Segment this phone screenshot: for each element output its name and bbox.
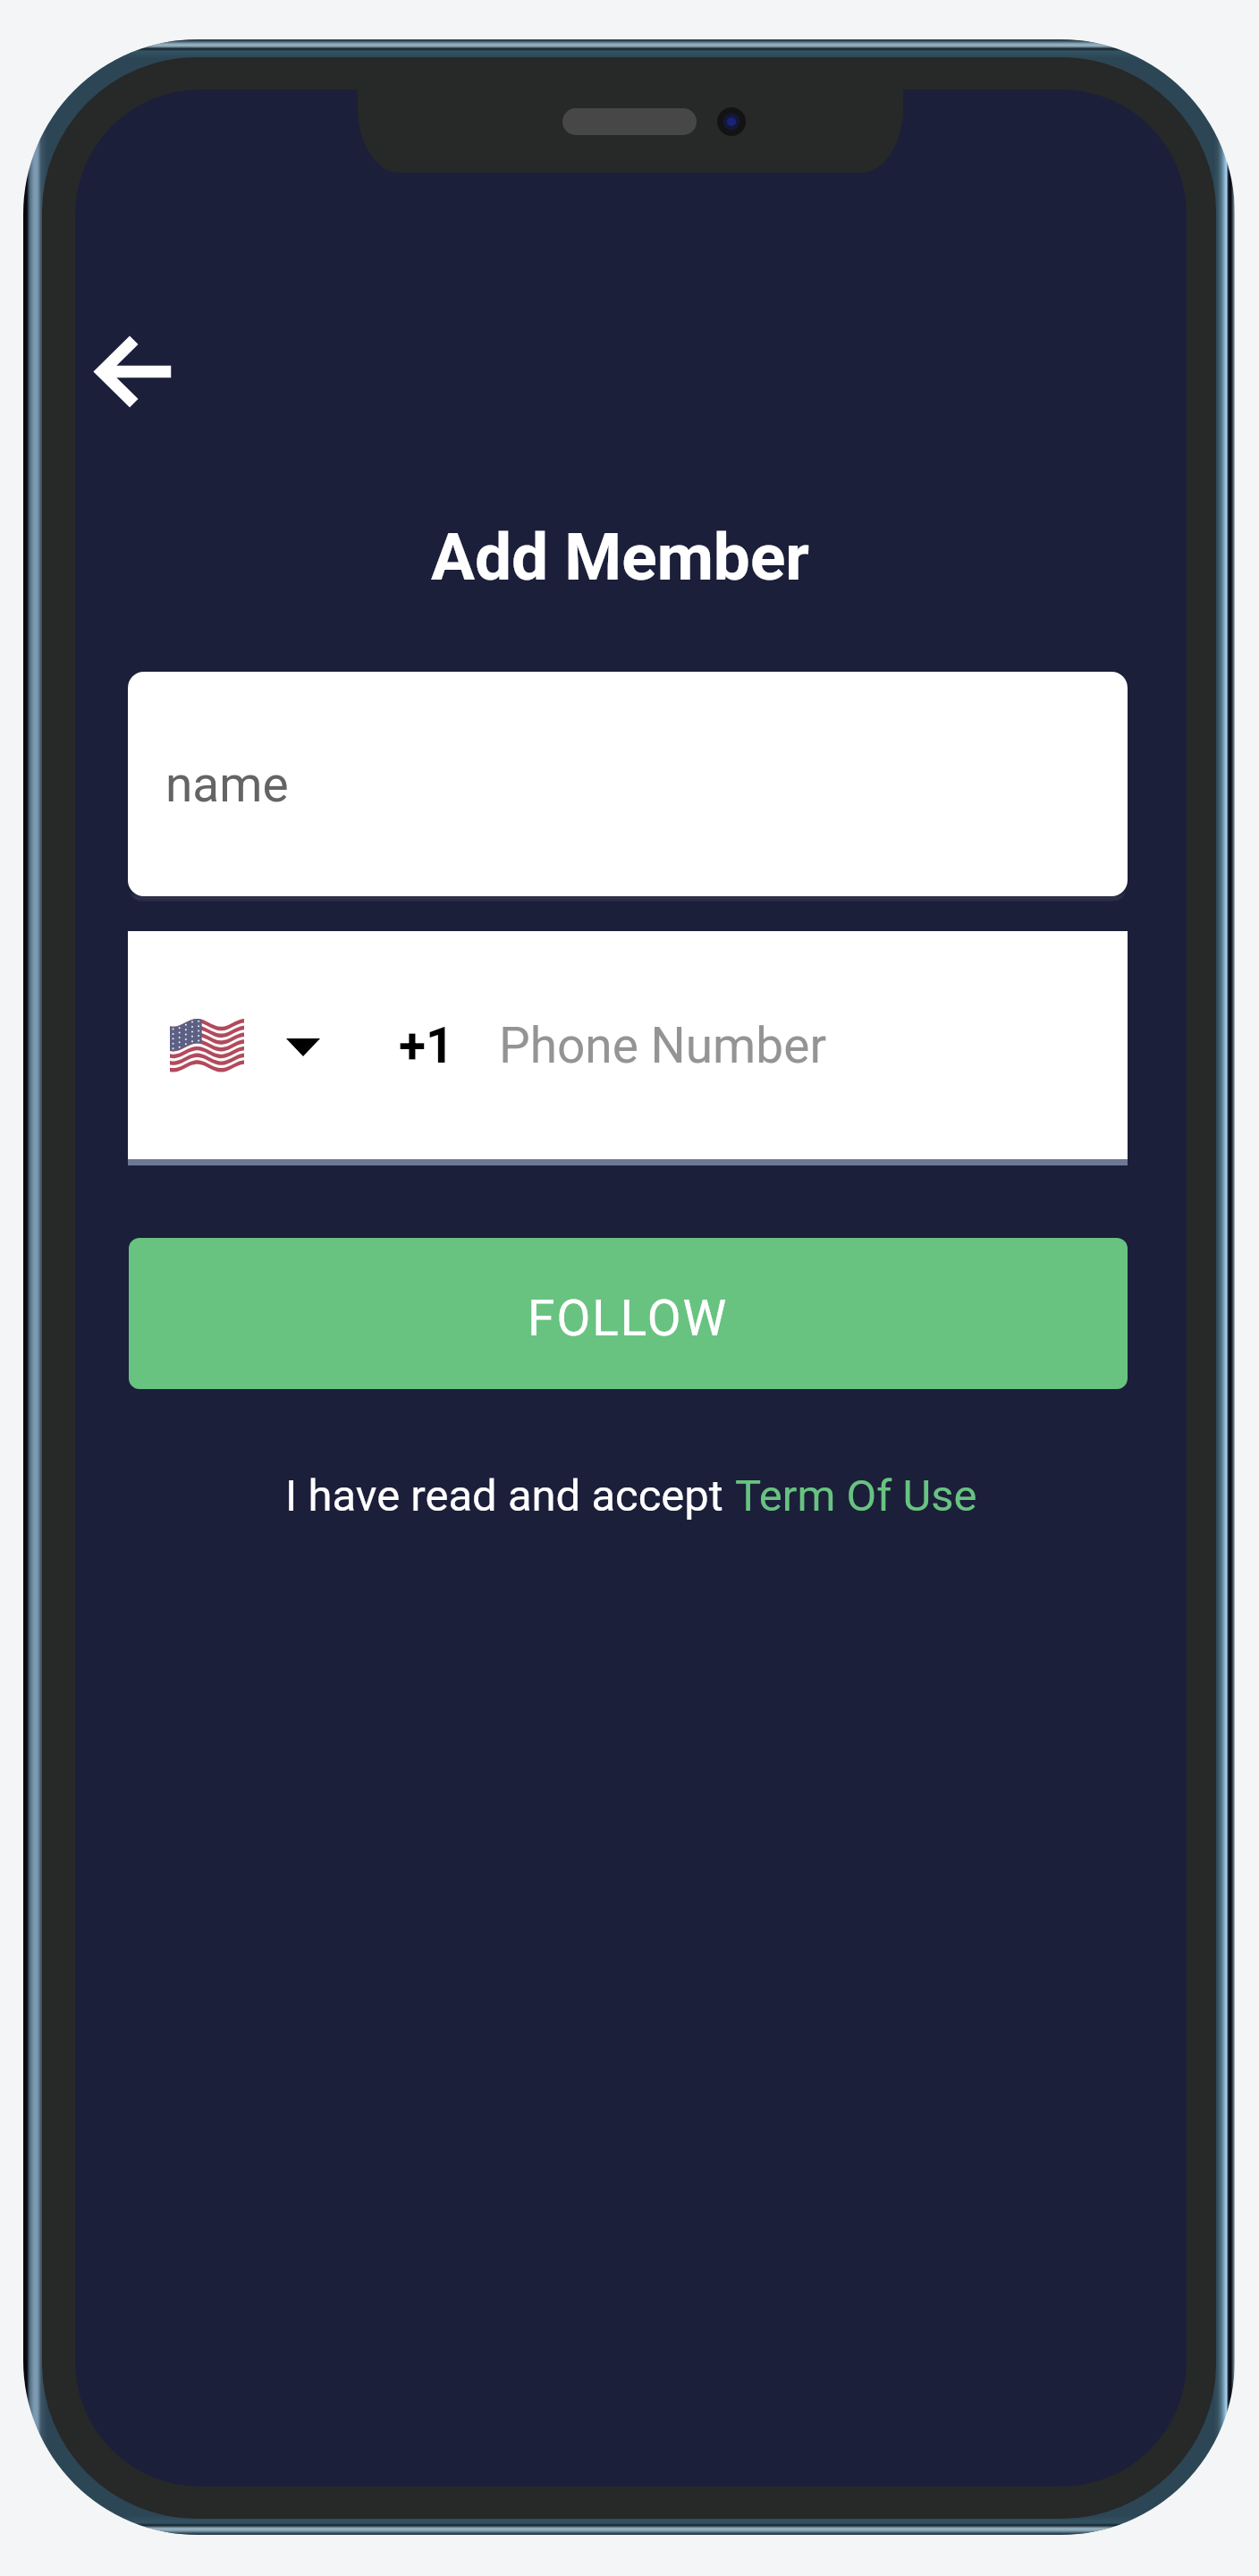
button[interactable]: Term Of Use xyxy=(735,1470,977,1521)
button[interactable]: Select country code xyxy=(128,931,1128,1159)
button[interactable]: Back xyxy=(80,316,191,427)
staticText: Term Of Use xyxy=(735,1470,977,1521)
staticText: Add Member xyxy=(75,519,1176,596)
staticText: FOLLOW xyxy=(528,1290,729,1347)
staticText: Phone Number xyxy=(499,1017,827,1074)
staticText: +1 xyxy=(399,1017,454,1074)
staticText: I have read and accept xyxy=(285,1470,735,1521)
button[interactable]: Select country code xyxy=(128,931,320,1159)
button[interactable]: name xyxy=(128,672,1128,896)
button[interactable]: FOLLOW xyxy=(129,1238,1128,1389)
staticText: name xyxy=(165,756,289,813)
